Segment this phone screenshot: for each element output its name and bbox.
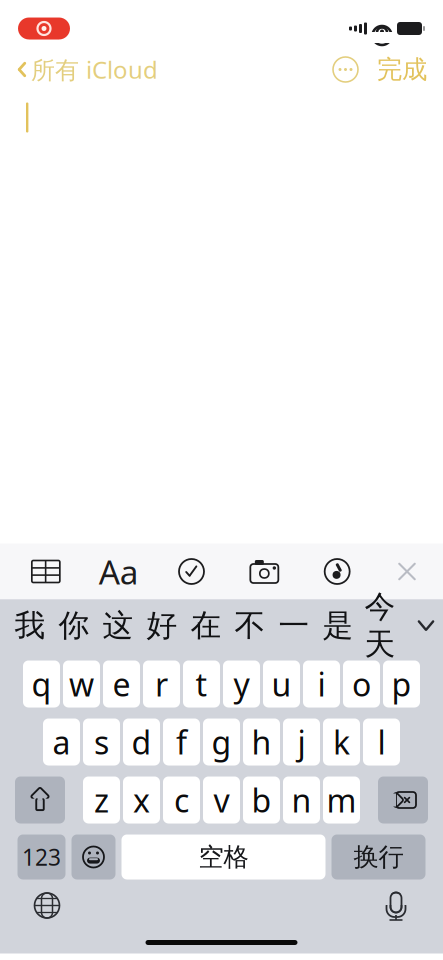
button[interactable]: 在 [184,600,228,650]
staticText: 我 [14,607,45,644]
button[interactable]: 关闭键盘 [383,546,431,596]
button[interactable]: m [323,776,360,823]
button[interactable]: x [123,776,160,823]
button[interactable]: n [283,776,320,823]
button[interactable]: 我 [8,600,52,650]
button[interactable]: 是 [316,600,360,650]
button[interactable]: 今天 [360,600,400,650]
staticText: 是 [322,607,353,644]
staticText: 一 [278,607,309,644]
button[interactable]: g [203,718,240,765]
button[interactable]: 123 [17,834,65,879]
button[interactable]: 空格 [121,834,325,879]
button[interactable]: 更多候选 [409,600,443,650]
staticText: 不 [234,607,265,644]
button[interactable]: r [143,660,180,707]
button[interactable]: h [243,718,280,765]
button[interactable]: l [363,718,400,765]
staticText: d [131,721,151,763]
staticText: y [233,663,249,705]
staticText: 你 [58,607,89,644]
button[interactable]: p [383,660,420,707]
button[interactable]: y [223,660,260,707]
staticText: q [31,663,51,705]
button[interactable]: 清单 [164,546,218,596]
staticText: 好 [146,607,177,644]
staticText: 这 [102,607,133,644]
button[interactable]: 完成 [359,48,427,91]
staticText: g [211,721,231,763]
staticText: t [195,663,207,705]
staticText: v [213,779,229,821]
button[interactable]: 切换键盘 [24,882,70,928]
button[interactable]: q [23,660,60,707]
staticText: i [317,663,325,705]
button[interactable]: 删除 [378,776,428,823]
staticText: a [52,721,70,763]
button[interactable]: u [263,660,300,707]
button[interactable]: 相机 [237,546,291,596]
button[interactable]: w [63,660,100,707]
button[interactable]: 所有 iCloud [16,48,158,91]
button[interactable]: Shift [15,776,65,823]
button[interactable]: j [283,718,320,765]
staticText: w [69,663,94,705]
button[interactable]: z [83,776,120,823]
button[interactable]: 标记 [310,546,364,596]
staticText: l [377,721,385,763]
staticText: z [94,779,109,821]
staticText: e [112,663,130,705]
button[interactable]: o [343,660,380,707]
button[interactable]: 换行 [331,834,425,879]
button[interactable]: 好 [140,600,184,650]
staticText: m [326,779,356,821]
staticText: p [391,663,411,705]
button[interactable]: 这 [96,600,140,650]
staticText: 123 [22,842,61,872]
staticText: n [291,779,311,821]
staticText: x [133,779,150,821]
staticText: k [333,721,350,763]
staticText: o [352,663,371,705]
staticText: u [271,663,291,705]
button[interactable]: e [103,660,140,707]
staticText: h [251,721,271,763]
staticText: c [174,779,189,821]
staticText: b [251,779,271,821]
staticText: 空格 [198,841,248,872]
staticText: Aa [99,549,139,594]
button[interactable]: t [183,660,220,707]
button[interactable]: a [43,718,80,765]
button[interactable]: f [163,718,200,765]
staticText: 今天 [364,588,395,663]
button[interactable]: c [163,776,200,823]
button[interactable]: 格式 [92,546,146,596]
button[interactable]: d [123,718,160,765]
button[interactable]: 一 [272,600,316,650]
button[interactable]: 你 [52,600,96,650]
button[interactable]: i [303,660,340,707]
staticText: 在 [190,607,221,644]
staticText: 完成 [377,54,427,85]
button[interactable]: 表格 [19,546,73,596]
button[interactable]: k [323,718,360,765]
staticText: 所有 iCloud [31,54,158,85]
button[interactable]: s [83,718,120,765]
staticText: s [94,721,109,763]
staticText: j [297,721,305,763]
staticText: f [176,721,187,763]
button[interactable]: 表情 [71,834,115,879]
button[interactable]: 听写 [373,882,419,928]
button[interactable]: v [203,776,240,823]
button[interactable]: b [243,776,280,823]
button[interactable]: 不 [228,600,272,650]
button[interactable]: 更多 [332,52,359,87]
staticText: r [155,663,168,705]
staticText: 换行 [353,841,403,872]
